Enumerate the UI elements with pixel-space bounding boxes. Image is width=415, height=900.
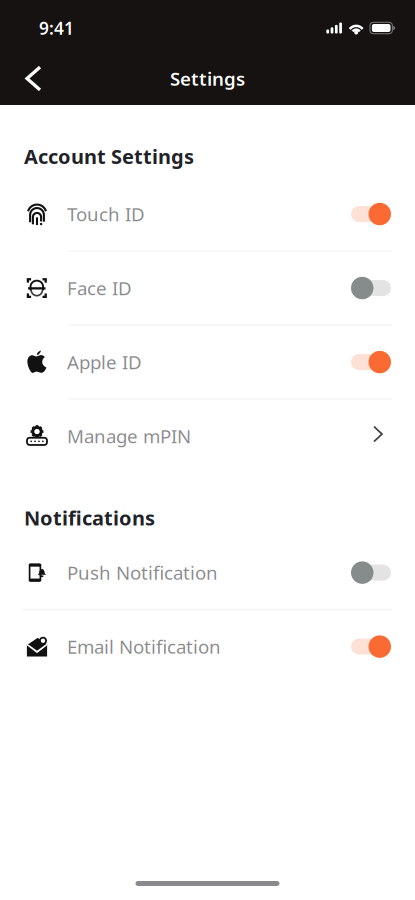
button[interactable]: Push Notification xyxy=(0,536,415,609)
staticText: Touch ID xyxy=(67,202,145,226)
staticText: Apple ID xyxy=(67,350,142,374)
staticText: Email Notification xyxy=(67,634,221,659)
button[interactable]: Face ID xyxy=(0,252,415,325)
button[interactable]: Email Notification xyxy=(0,610,415,683)
staticText: Face ID xyxy=(67,276,132,300)
button[interactable]: Touch ID xyxy=(0,178,415,251)
staticText: Settings xyxy=(170,66,245,91)
staticText: Manage mPIN xyxy=(67,424,191,448)
staticText: 9:41 xyxy=(39,16,74,39)
staticText: Push Notification xyxy=(67,560,218,585)
button[interactable]: Apple ID xyxy=(0,326,415,399)
staticText: Account Settings xyxy=(24,143,194,170)
staticText: Notifications xyxy=(24,505,155,531)
button[interactable]: Back xyxy=(16,56,51,101)
button[interactable]: Manage mPIN xyxy=(0,400,415,473)
